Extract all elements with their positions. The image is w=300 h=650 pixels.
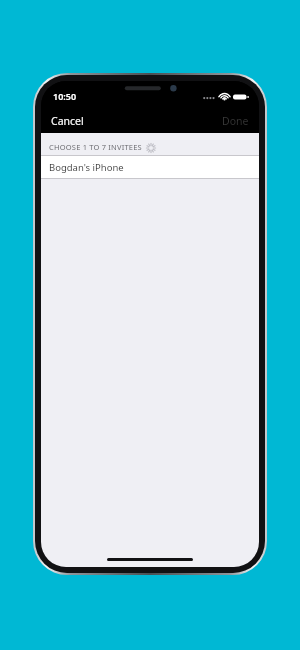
staticText: Cancel — [51, 114, 84, 128]
staticText: 10:50 — [53, 90, 77, 102]
staticText: CHOOSE 1 TO 7 INVITEES — [49, 142, 142, 152]
button[interactable]: Bogdan's iPhone — [41, 156, 259, 178]
button[interactable]: Done — [212, 110, 259, 132]
button[interactable]: Cancel — [41, 110, 94, 132]
staticText: Bogdan's iPhone — [49, 161, 124, 174]
staticText: Done — [222, 114, 249, 128]
